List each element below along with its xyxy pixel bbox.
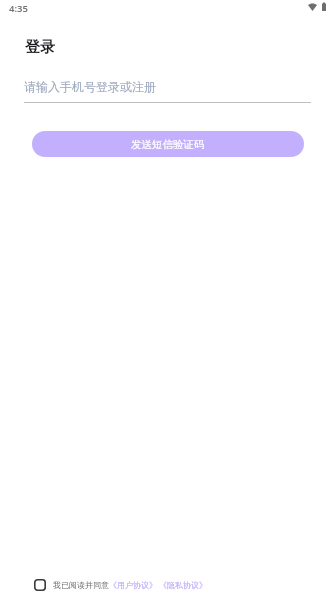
staticText: 我已阅读并同意《用户协议》 《隐私协议》 — [53, 579, 208, 590]
button[interactable]: Agree to terms checkbox — [34, 578, 208, 590]
button[interactable]: 发送短信验证码 — [32, 131, 304, 157]
other: Agree to terms checkbox — [34, 579, 46, 591]
staticText: 请输入手机号登录或注册 — [24, 79, 156, 94]
staticText: 发送短信验证码 — [131, 138, 205, 151]
button[interactable]: 请输入手机号登录或注册 — [24, 79, 311, 103]
staticText: 登录 — [25, 38, 55, 57]
staticText: 4:35 — [9, 2, 28, 15]
